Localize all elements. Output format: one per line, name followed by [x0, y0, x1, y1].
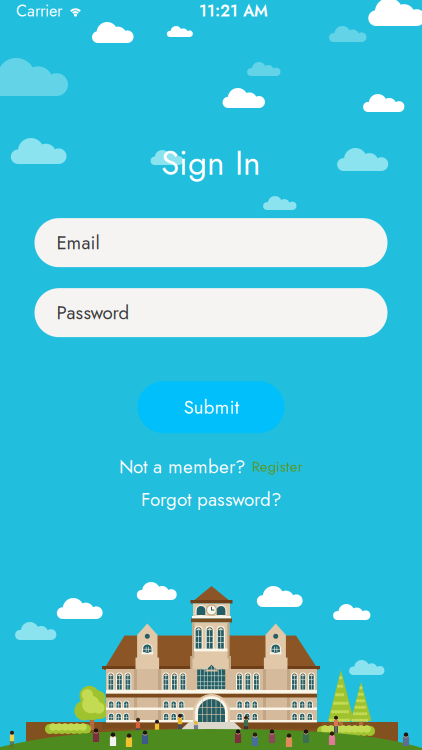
button[interactable]: Submit — [137, 381, 284, 433]
staticText: Register — [252, 456, 303, 477]
staticText: Submit — [183, 394, 238, 421]
button[interactable]: Register — [252, 456, 303, 477]
staticText: Forgot password? — [141, 486, 281, 513]
staticText: Carrier — [16, 0, 62, 22]
staticText: Email — [56, 229, 99, 256]
staticText: Sign In — [161, 139, 261, 187]
button[interactable]: Forgot password? — [141, 486, 281, 513]
staticText: 11:21 AM — [199, 0, 268, 22]
staticText: Not a member? — [119, 453, 245, 480]
staticText: Password — [56, 299, 129, 326]
